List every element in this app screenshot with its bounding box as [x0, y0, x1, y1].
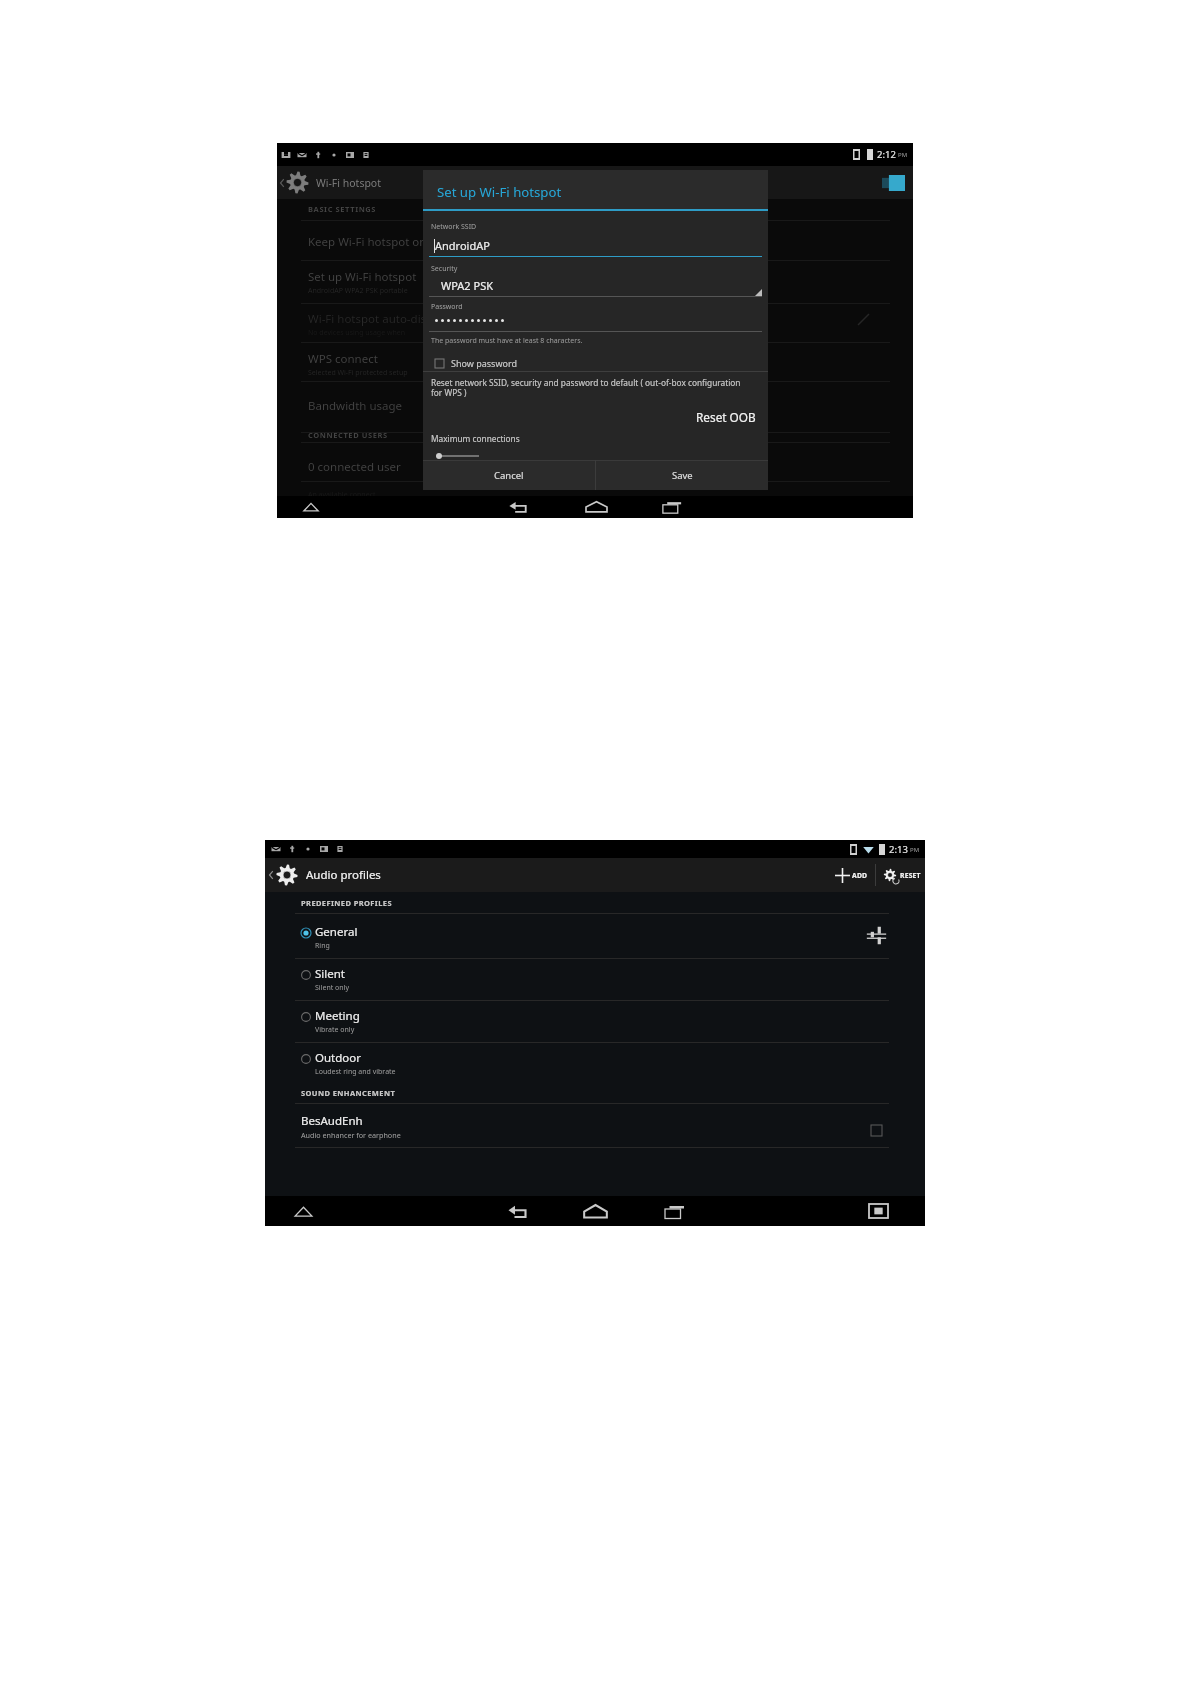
staticText: 2:12: [877, 148, 896, 161]
staticText: 0 connected user: [308, 459, 401, 475]
button[interactable]: General: [265, 924, 925, 958]
button[interactable]: WPS connect: [308, 351, 668, 378]
staticText: Wi-Fi hotspot auto-disable: [308, 311, 450, 327]
button[interactable]: Outdoor: [265, 1050, 925, 1084]
button[interactable]: Wi-Fi hotspot auto-disable: [308, 311, 668, 338]
button[interactable]: BesAudEnh: [265, 1110, 925, 1150]
staticText: Wi-Fi hotspot: [316, 176, 382, 190]
staticText: 2:13: [889, 843, 908, 856]
staticText: Outdoor: [315, 1050, 361, 1066]
staticText: Selected Wi-Fi protected setup: [308, 368, 408, 378]
staticText: AndroidAP: [435, 238, 490, 253]
staticText: Reset OOB: [696, 409, 756, 425]
staticText: Audio profiles: [306, 867, 381, 883]
staticText: Password: [431, 302, 463, 312]
staticText: Set up Wi-Fi hotspot: [437, 183, 562, 201]
staticText: Maximum connections: [431, 433, 520, 444]
button[interactable]: ADD: [829, 858, 875, 892]
staticText: Network SSID: [431, 222, 477, 232]
staticText: BesAudEnh: [301, 1113, 363, 1129]
button[interactable]: Security type: WPA2 PSK: [429, 274, 762, 296]
button[interactable]: Back: [507, 496, 531, 518]
button[interactable]: Equalizer: [865, 924, 888, 947]
button[interactable]: Recents: [660, 496, 684, 518]
button[interactable]: Navigate up: [277, 166, 913, 199]
button[interactable]: 0 connected user: [308, 459, 668, 475]
button[interactable]: Home: [582, 1198, 609, 1225]
button[interactable]: Up: [293, 1201, 314, 1222]
button[interactable]: Back: [506, 1199, 531, 1224]
staticText: Show password: [451, 357, 517, 369]
button[interactable]: Up: [302, 498, 320, 516]
button[interactable]: Enable BesAudEnh: [871, 1125, 882, 1136]
staticText: Bandwidth usage: [308, 398, 403, 414]
staticText: Reset network SSID, security and passwor…: [431, 377, 753, 398]
button[interactable]: Reset OOB: [653, 405, 756, 429]
staticText: Cancel: [494, 469, 524, 482]
staticText: PREDEFINED PROFILES: [301, 898, 392, 908]
button[interactable]: Wi-Fi hotspot on/off: [882, 175, 905, 191]
button[interactable]: Screenshot: [869, 1204, 888, 1218]
staticText: Set up Wi-Fi hotspot: [308, 269, 417, 285]
staticText: Meeting: [315, 1008, 360, 1024]
staticText: PM: [910, 846, 920, 854]
button[interactable]: Set up Wi-Fi hotspot: [308, 269, 668, 296]
button[interactable]: Navigate up: [268, 870, 274, 880]
button[interactable]: Bandwidth usage: [308, 398, 668, 414]
staticText: Silent: [315, 966, 345, 982]
button[interactable]: Recents: [662, 1199, 687, 1224]
staticText: CONNECTED USERS: [308, 430, 388, 440]
staticText: WPA2 PSK: [441, 278, 494, 293]
button[interactable]: Keep Wi-Fi hotspot on: [308, 234, 668, 250]
staticText: WPS connect: [308, 351, 378, 367]
button[interactable]: Navigate up: [279, 178, 285, 188]
button[interactable]: Home: [584, 496, 609, 518]
staticText: Keep Wi-Fi hotspot on: [308, 234, 427, 250]
staticText: The password must have at least 8 charac…: [431, 336, 583, 346]
staticText: Loudest ring and vibrate: [315, 1067, 396, 1077]
staticText: RESET: [900, 871, 921, 880]
staticText: ADD: [852, 871, 868, 880]
staticText: PM: [898, 151, 908, 159]
button[interactable]: RESET: [876, 858, 925, 892]
button[interactable]: Show password: [431, 354, 517, 372]
staticText: General: [315, 924, 358, 940]
button[interactable]: Silent: [265, 966, 925, 1000]
staticText: AndroidAP WPA2 PSK portable: [308, 286, 408, 296]
staticText: Ring: [315, 941, 330, 951]
staticText: Security: [431, 264, 458, 274]
staticText: SOUND ENHANCEMENT: [301, 1088, 396, 1098]
button[interactable]: Cancel: [423, 460, 595, 490]
staticText: Vibrate only: [315, 1025, 355, 1035]
button[interactable]: Meeting: [265, 1008, 925, 1042]
staticText: An available connect: [308, 490, 376, 500]
button[interactable]: Navigate up: [265, 858, 925, 892]
staticText: Silent only: [315, 983, 350, 993]
staticText: Save: [672, 469, 693, 482]
staticText: Audio enhancer for earphone: [301, 1130, 401, 1140]
staticText: BASIC SETTINGS: [308, 204, 377, 214]
button[interactable]: Save: [596, 460, 768, 490]
